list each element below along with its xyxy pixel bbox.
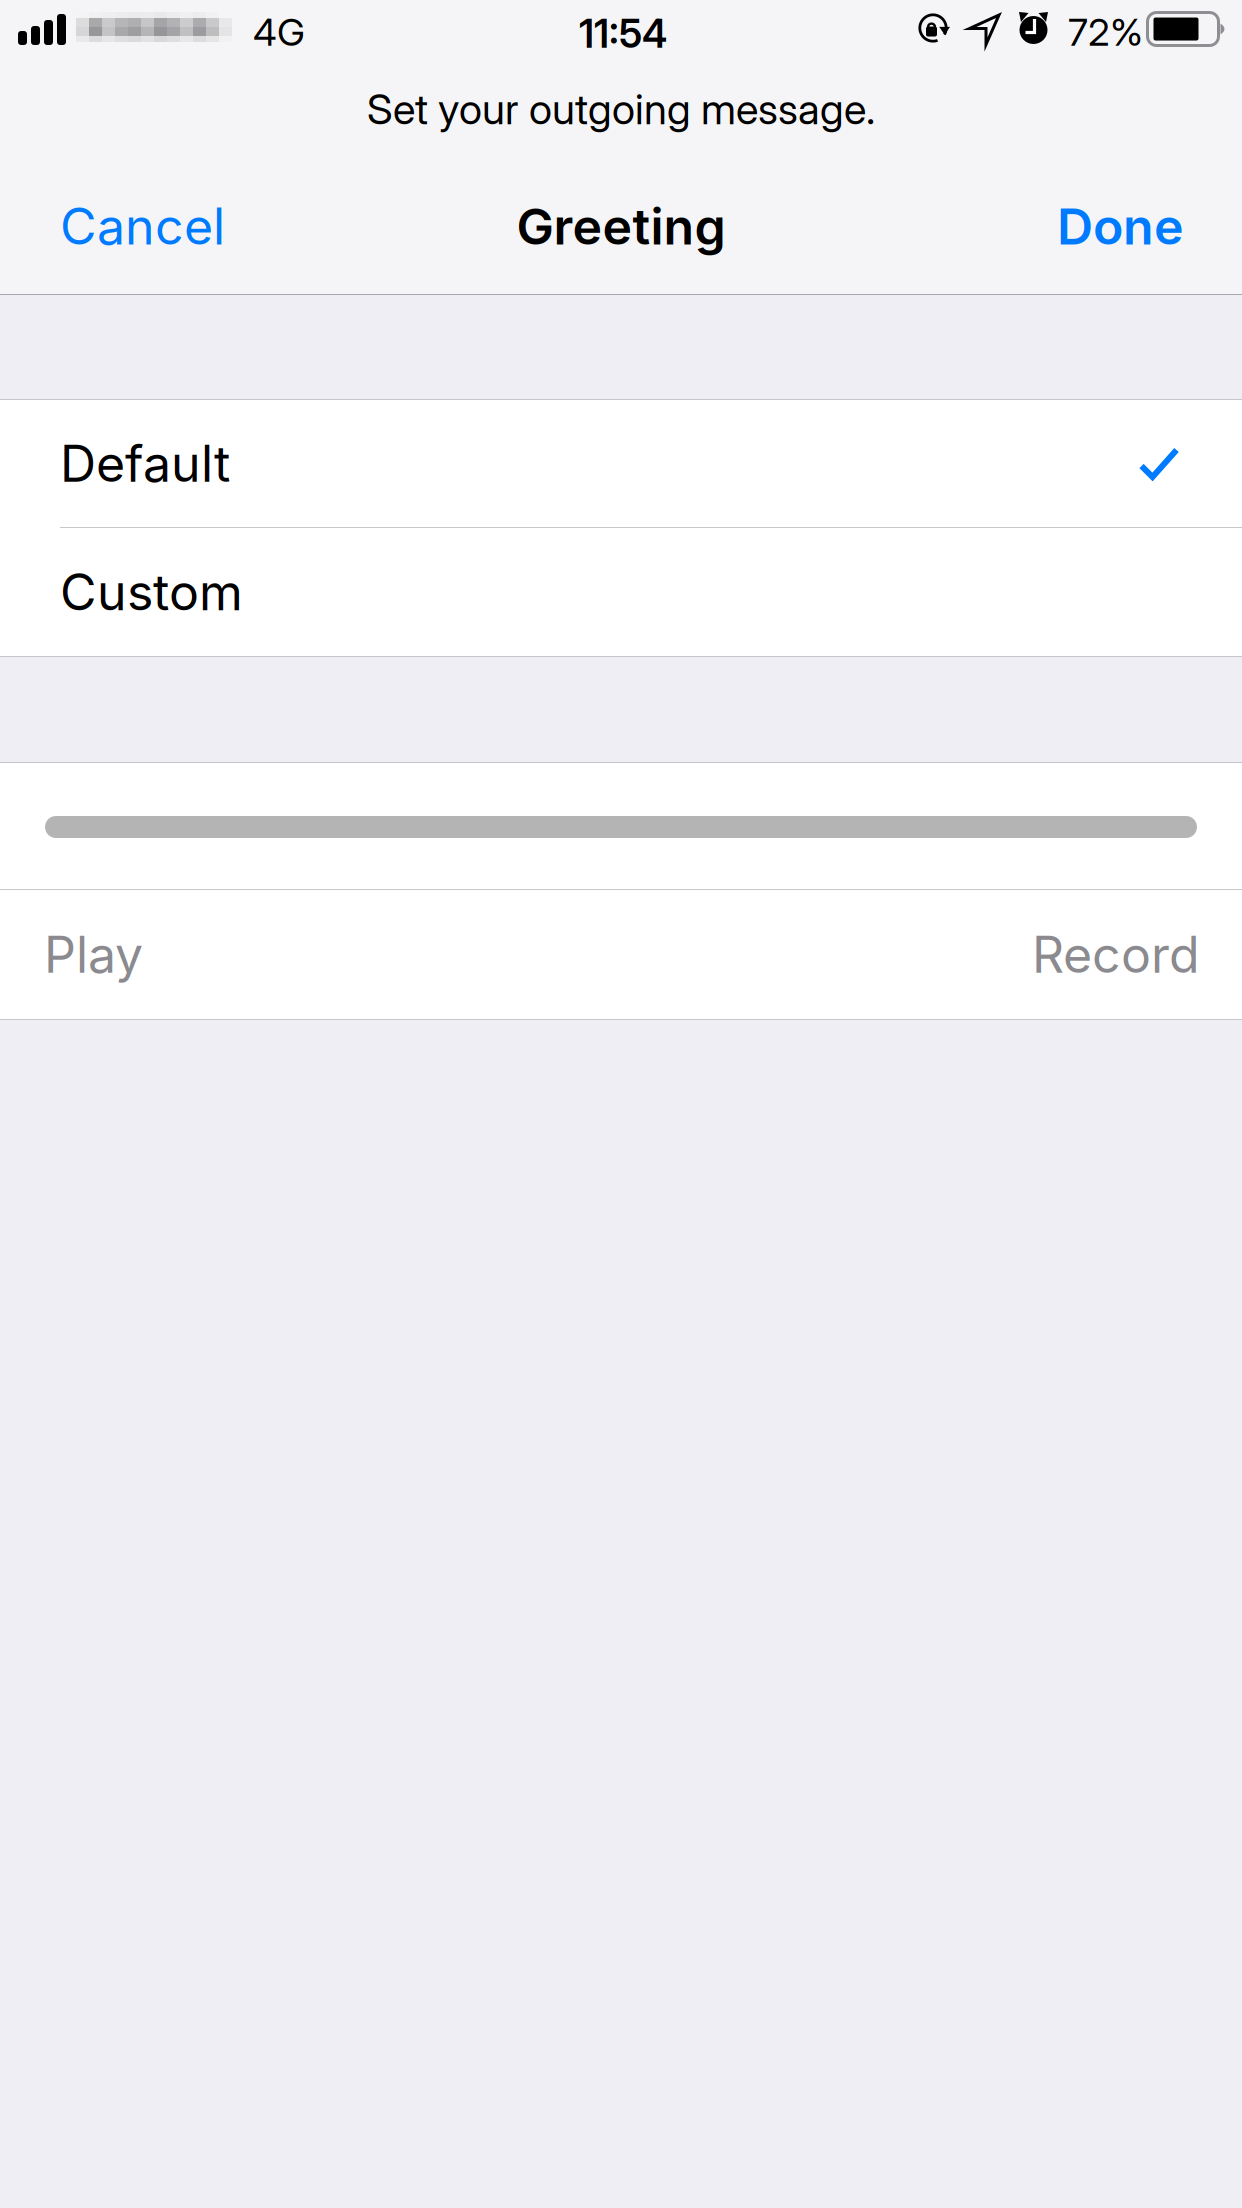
staticText: Record [1032,924,1200,985]
staticText: 72% [1068,9,1143,55]
staticText: 11:54 [579,10,667,57]
button[interactable]: Record [900,890,1200,1019]
staticText: Set your outgoing message. [367,84,875,134]
staticText: Custom [60,562,243,622]
button[interactable]: Cancel [60,169,260,321]
staticText: Cancel [60,196,225,256]
staticText: 4G [253,9,305,55]
button[interactable]: Done [984,169,1184,321]
button[interactable]: Play [44,890,304,1019]
button[interactable]: Default [0,400,1242,527]
staticText: Greeting [516,196,725,256]
staticText: Play [44,924,143,985]
staticText: Default [60,433,230,494]
button[interactable]: Custom [0,528,1242,656]
staticText: Done [1057,196,1184,256]
